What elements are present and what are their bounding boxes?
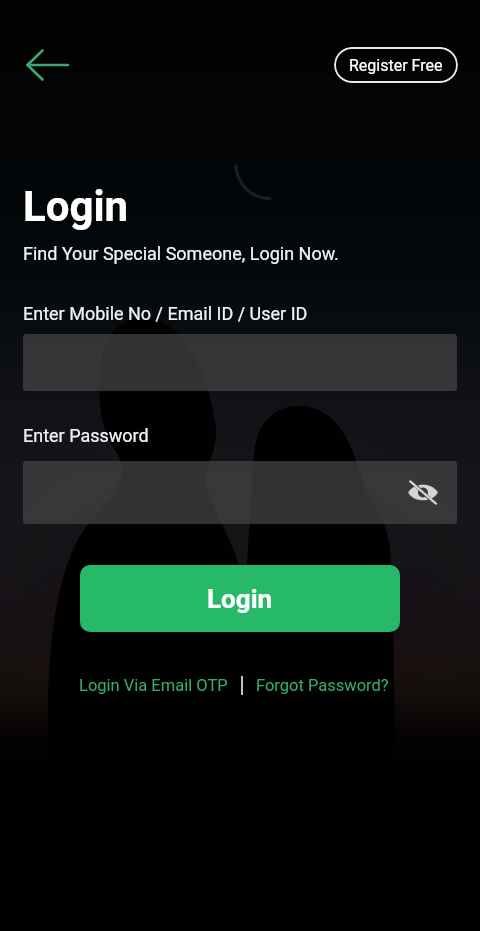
- staticText: Register Free: [349, 56, 443, 75]
- button[interactable]: Back: [22, 43, 74, 87]
- staticText: Login: [23, 182, 129, 231]
- staticText: Login: [207, 584, 273, 614]
- button[interactable]: Register Free: [334, 47, 458, 83]
- button[interactable]: Forgot Password?: [256, 676, 389, 695]
- button[interactable]: Login: [80, 565, 400, 632]
- button[interactable]: Show password: [407, 481, 439, 504]
- staticText: Enter Mobile No / Email ID / User ID: [23, 303, 308, 324]
- staticText: Forgot Password?: [256, 676, 389, 695]
- staticText: Enter Password: [23, 425, 149, 446]
- button[interactable]: Show password: [23, 461, 457, 524]
- staticText: Login Via Email OTP: [79, 676, 228, 695]
- staticText: Find Your Special Someone, Login Now.: [23, 243, 339, 264]
- button[interactable]: Login Via Email OTP: [79, 676, 228, 695]
